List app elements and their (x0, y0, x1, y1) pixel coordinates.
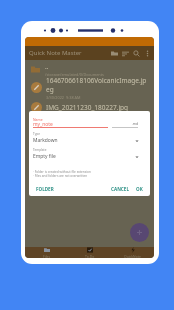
staticText: · Files and folders are not overwritten (33, 174, 88, 178)
staticText: /storage/emulated/0/Documents (45, 72, 104, 76)
staticText: FOLDER (36, 186, 54, 192)
staticText: 1646706618106VolcanicImage.jpeg (46, 76, 147, 94)
staticText: OK (136, 186, 143, 192)
button[interactable]: .. (25, 60, 154, 76)
button[interactable]: 1646706618106VolcanicImage.jpeg (25, 76, 154, 99)
button[interactable]: More options (142, 46, 153, 60)
staticText: Template (33, 148, 47, 152)
staticText: Type (33, 132, 40, 136)
staticText: QuickNote (124, 254, 141, 258)
staticText: Name (33, 117, 43, 122)
staticText: Quick Note Master (29, 49, 82, 57)
staticText: CANCEL (111, 186, 129, 192)
button[interactable]: FOLDER (34, 184, 56, 194)
staticText: my_note (33, 121, 53, 128)
staticText: .. (45, 62, 49, 71)
staticText: To-Do (85, 254, 95, 258)
button[interactable]: Folder (109, 46, 120, 60)
staticText: Markdown (33, 137, 58, 144)
staticText: Empty file (33, 153, 56, 160)
button[interactable]: Search (131, 46, 142, 60)
button[interactable]: OK (134, 184, 145, 194)
staticText: 3/30/2022, 9:38 AM (46, 95, 81, 99)
staticText: Files (43, 254, 51, 258)
staticText: · Folder is created without file extensi… (33, 170, 91, 174)
staticText: IMG_20211230_180227.jpg (46, 103, 129, 112)
staticText: .md (112, 121, 138, 126)
button[interactable]: CANCEL (109, 184, 131, 194)
button[interactable]: Sort (120, 46, 131, 60)
button[interactable]: IMG_20211230_180227.jpg (25, 99, 154, 115)
button[interactable]: Files (25, 247, 68, 258)
button[interactable]: Add note (130, 223, 149, 242)
button[interactable]: To-Do (68, 247, 111, 258)
button[interactable]: QuickNote (111, 247, 154, 258)
